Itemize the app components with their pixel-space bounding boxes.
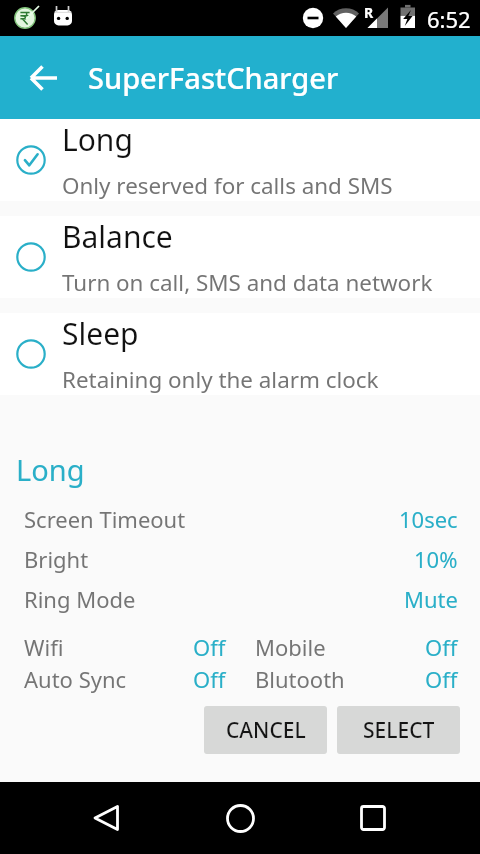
staticText: Off (193, 664, 226, 694)
staticText: SuperFastCharger (88, 58, 339, 97)
staticText: Off (425, 664, 458, 694)
button[interactable]: Back (82, 793, 132, 843)
staticText: Long (62, 119, 133, 160)
staticText: Bright (24, 544, 89, 574)
staticText: Auto Sync (24, 664, 127, 694)
staticText: Mute (404, 584, 458, 614)
button[interactable]: CANCEL (204, 706, 327, 754)
staticText: 10sec (399, 504, 458, 534)
button[interactable]: Back (16, 50, 72, 106)
staticText: Blutooth (255, 664, 345, 694)
staticText: Long (16, 450, 85, 489)
staticText: Off (425, 632, 458, 662)
button[interactable]: Sleep (0, 313, 480, 395)
staticText: 10% (414, 544, 458, 574)
staticText: R (364, 3, 374, 22)
button[interactable]: SELECT (337, 706, 460, 754)
button[interactable]: Balance (0, 216, 480, 298)
button[interactable]: Long (0, 119, 480, 201)
staticText: Mobile (255, 632, 326, 662)
staticText: Ring Mode (24, 584, 136, 614)
staticText: Wifi (24, 632, 64, 662)
staticText: 6:52 (427, 4, 471, 34)
staticText: Off (193, 632, 226, 662)
button[interactable]: Home (215, 793, 265, 843)
staticText: Retaining only the alarm clock (62, 364, 379, 395)
staticText: Balance (62, 216, 173, 257)
staticText: Turn on call, SMS and data network (62, 267, 433, 298)
button[interactable]: Recents (348, 793, 398, 843)
staticText: SELECT (363, 716, 435, 745)
staticText: Only reserved for calls and SMS (62, 170, 393, 201)
staticText: Sleep (62, 313, 139, 354)
staticText: CANCEL (226, 716, 306, 745)
staticText: Screen Timeout (24, 504, 186, 534)
